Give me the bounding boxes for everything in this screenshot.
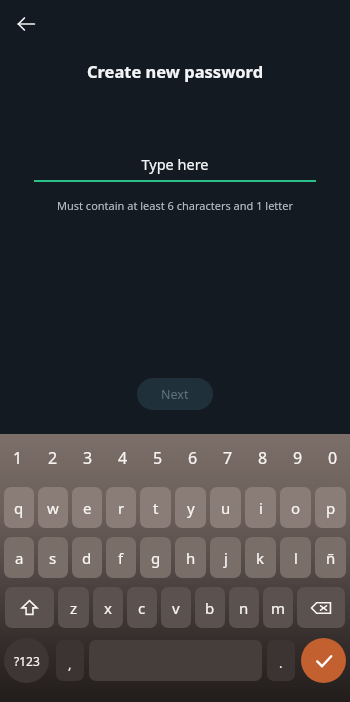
- button[interactable]: 2: [35, 446, 70, 470]
- button[interactable]: c: [127, 587, 157, 628]
- button[interactable]: Type here: [34, 154, 316, 182]
- staticText: 1: [13, 447, 23, 469]
- staticText: x: [104, 598, 112, 618]
- staticText: 0: [328, 447, 338, 469]
- staticText: Next: [161, 386, 189, 403]
- button[interactable]: 9: [280, 446, 315, 470]
- button[interactable]: t: [140, 487, 171, 528]
- staticText: q: [14, 498, 24, 518]
- staticText: t: [153, 498, 159, 518]
- staticText: n: [239, 598, 249, 618]
- staticText: Must contain at least 6 characters and 1…: [16, 198, 334, 213]
- button[interactable]: r: [106, 487, 136, 528]
- button[interactable]: Enter: [301, 638, 346, 683]
- staticText: k: [256, 548, 265, 568]
- staticText: m: [271, 598, 286, 618]
- button[interactable]: d: [72, 537, 102, 578]
- button[interactable]: b: [195, 587, 225, 628]
- button[interactable]: z: [58, 587, 89, 628]
- button[interactable]: a: [4, 537, 34, 578]
- button[interactable]: 4: [105, 446, 140, 470]
- staticText: ?123: [14, 653, 40, 669]
- button[interactable]: 5: [140, 446, 175, 470]
- staticText: l: [294, 548, 298, 568]
- staticText: ñ: [326, 548, 336, 568]
- button[interactable]: 6: [175, 446, 210, 470]
- staticText: ,: [68, 655, 72, 673]
- staticText: c: [138, 598, 146, 618]
- button[interactable]: Shift: [5, 587, 54, 628]
- staticText: v: [172, 598, 180, 618]
- staticText: Create new password: [0, 60, 350, 82]
- staticText: p: [326, 498, 336, 518]
- staticText: 5: [153, 447, 163, 469]
- staticText: f: [118, 548, 124, 568]
- staticText: j: [224, 548, 228, 568]
- button[interactable]: i: [245, 487, 276, 528]
- button[interactable]: x: [93, 587, 123, 628]
- button[interactable]: ñ: [315, 537, 346, 578]
- staticText: z: [70, 598, 78, 618]
- button[interactable]: .: [267, 640, 295, 681]
- staticText: o: [291, 498, 301, 518]
- button[interactable]: y: [175, 487, 206, 528]
- button[interactable]: j: [210, 537, 241, 578]
- staticText: s: [49, 548, 57, 568]
- button[interactable]: 3: [70, 446, 105, 470]
- button[interactable]: 8: [245, 446, 280, 470]
- staticText: w: [47, 498, 59, 518]
- staticText: u: [221, 498, 231, 518]
- button[interactable]: h: [175, 537, 206, 578]
- staticText: 4: [118, 447, 128, 469]
- button[interactable]: f: [106, 537, 136, 578]
- button[interactable]: m: [263, 587, 293, 628]
- staticText: Type here: [34, 154, 316, 174]
- button[interactable]: g: [140, 537, 171, 578]
- staticText: g: [151, 548, 161, 568]
- button[interactable]: ?123: [4, 638, 49, 683]
- button[interactable]: e: [72, 487, 102, 528]
- button[interactable]: ,: [56, 640, 84, 681]
- button[interactable]: n: [229, 587, 259, 628]
- staticText: e: [83, 498, 92, 518]
- button[interactable]: Back: [8, 6, 44, 42]
- button[interactable]: s: [38, 537, 68, 578]
- button[interactable]: 7: [210, 446, 245, 470]
- staticText: a: [15, 548, 24, 568]
- button[interactable]: l: [280, 537, 311, 578]
- staticText: 2: [48, 447, 58, 469]
- staticText: 6: [188, 447, 198, 469]
- button[interactable]: k: [245, 537, 276, 578]
- staticText: .: [279, 654, 283, 672]
- staticText: d: [82, 548, 92, 568]
- button[interactable]: 0: [315, 446, 350, 470]
- button[interactable]: Next: [137, 378, 213, 410]
- staticText: r: [118, 498, 125, 518]
- button[interactable]: q: [4, 487, 34, 528]
- staticText: y: [187, 498, 195, 518]
- staticText: 9: [293, 447, 303, 469]
- button[interactable]: w: [38, 487, 68, 528]
- button[interactable]: u: [210, 487, 241, 528]
- staticText: 3: [83, 447, 93, 469]
- staticText: h: [186, 548, 196, 568]
- button[interactable]: Backspace: [297, 587, 345, 628]
- staticText: i: [259, 498, 263, 518]
- staticText: b: [205, 598, 215, 618]
- button[interactable]: 1: [0, 446, 35, 470]
- button[interactable]: v: [161, 587, 191, 628]
- staticText: 8: [258, 447, 268, 469]
- button[interactable]: o: [280, 487, 311, 528]
- staticText: 7: [223, 447, 233, 469]
- button[interactable]: p: [315, 487, 346, 528]
